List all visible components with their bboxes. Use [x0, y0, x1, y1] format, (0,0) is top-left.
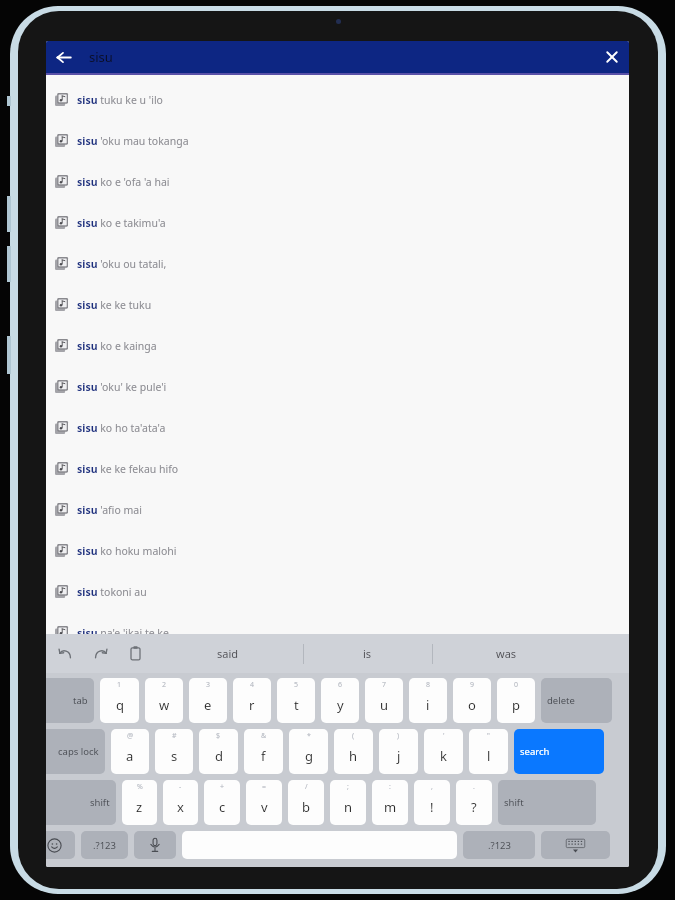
button[interactable]: sisu ke ke fekau hifo: [46, 448, 629, 489]
button[interactable]: sisu ko hoku malohi: [46, 530, 629, 571]
staticText: 2: [162, 680, 167, 690]
button[interactable]: :: [372, 780, 408, 825]
staticText: is: [363, 646, 372, 661]
button[interactable]: sisu tuku ke u 'ilo: [46, 79, 629, 120]
button[interactable]: #: [155, 729, 193, 774]
staticText: 5: [294, 680, 299, 690]
button[interactable]: 3: [189, 678, 227, 723]
staticText: sisu ko e takimu'a: [77, 216, 166, 230]
staticText: sisu 'oku mau tokanga: [77, 134, 189, 148]
button[interactable]: /: [288, 780, 324, 825]
button[interactable]: 1: [100, 678, 139, 723]
button[interactable]: -: [163, 780, 198, 825]
button[interactable]: 6: [321, 678, 359, 723]
button[interactable]: sisu ke mau nofo ai: [46, 694, 629, 735]
staticText: 3: [206, 680, 211, 690]
button[interactable]: $: [199, 729, 238, 774]
button[interactable]: ,: [414, 780, 450, 825]
button[interactable]: is: [303, 634, 432, 673]
staticText: n: [344, 798, 353, 816]
staticText: 7: [382, 680, 387, 690]
button[interactable]: was: [432, 634, 581, 673]
button[interactable]: sisu 'oku ou tatali,: [46, 243, 629, 284]
button[interactable]: *: [289, 729, 328, 774]
staticText: caps lock: [58, 745, 99, 758]
staticText: sisu 'afio mai: [77, 503, 142, 517]
staticText: d: [215, 747, 223, 765]
button[interactable]: 4: [233, 678, 271, 723]
button[interactable]: @: [111, 729, 149, 774]
button[interactable]: Paste: [117, 634, 153, 673]
staticText: b: [302, 798, 310, 816]
staticText: sisu 'oku ou tatali,: [77, 257, 167, 271]
button[interactable]: sisu ko e takimu'a: [46, 202, 629, 243]
button[interactable]: ;: [330, 780, 366, 825]
staticText: r: [249, 696, 255, 714]
button[interactable]: shift: [498, 780, 596, 825]
staticText: sisu 'oku' ke pule'i: [77, 380, 167, 394]
button[interactable]: .?123: [81, 831, 128, 859]
button[interactable]: sisu ke ke tuku: [46, 284, 629, 325]
staticText: *: [307, 731, 311, 741]
button[interactable]: caps lock: [46, 729, 105, 774]
button[interactable]: &: [244, 729, 283, 774]
button[interactable]: .: [456, 780, 492, 825]
button[interactable]: 2: [145, 678, 183, 723]
button[interactable]: sisu ko e 'ofa 'a hai: [46, 161, 629, 202]
staticText: .?123: [93, 839, 116, 852]
button[interactable]: Dictate: [134, 831, 176, 859]
staticText: shift: [90, 796, 110, 809]
button[interactable]: sisu ko e kainga: [46, 325, 629, 366]
button[interactable]: search: [514, 729, 604, 774]
button[interactable]: said: [153, 634, 303, 673]
button[interactable]: Emoji: [46, 831, 75, 859]
button[interactable]: sisu ko ho ta'ata'a: [46, 407, 629, 448]
button[interactable]: shift: [46, 780, 116, 825]
staticText: a: [126, 747, 134, 765]
button[interactable]: sisu 'afio mai: [46, 489, 629, 530]
button[interactable]: ": [469, 729, 508, 774]
staticText: +: [220, 782, 225, 792]
button[interactable]: ': [424, 729, 463, 774]
staticText: &: [261, 731, 267, 741]
staticText: ,: [431, 782, 433, 792]
button[interactable]: sisu tokoni au: [46, 571, 629, 612]
staticText: !: [430, 798, 434, 816]
button[interactable]: sisu 'oku' ke pule'i: [46, 366, 629, 407]
button[interactable]: Close: [595, 41, 629, 73]
button[interactable]: ): [379, 729, 418, 774]
staticText: k: [440, 747, 447, 765]
staticText: sisu tuku ke u 'ilo: [77, 93, 163, 107]
button[interactable]: 8: [409, 678, 447, 723]
button[interactable]: 0: [497, 678, 535, 723]
button[interactable]: +: [204, 780, 240, 825]
button[interactable]: delete: [541, 678, 612, 723]
button[interactable]: sisu na'e 'ikai te ke: [46, 612, 629, 653]
staticText: i: [426, 696, 430, 714]
staticText: sisu 'oku ke fie ngaue: [77, 667, 184, 681]
staticText: sisu ko hoku malohi: [77, 544, 177, 558]
button[interactable]: Redo: [84, 634, 117, 673]
staticText: sisu ko e kainga: [77, 339, 157, 353]
button[interactable]: %: [122, 780, 157, 825]
button[interactable]: 5: [277, 678, 315, 723]
staticText: sisu ke mau nofo ai: [77, 708, 174, 722]
button[interactable]: .?123: [463, 831, 535, 859]
button[interactable]: Hide keyboard: [541, 831, 610, 859]
button[interactable]: 7: [365, 678, 403, 723]
staticText: c: [219, 798, 226, 816]
button[interactable]: tab: [46, 678, 94, 723]
button[interactable]: sisu 'oku mau tokanga: [46, 120, 629, 161]
staticText: sisu ko ho ta'ata'a: [77, 421, 166, 435]
staticText: =: [262, 782, 267, 792]
staticText: sisu: [89, 48, 113, 66]
button[interactable]: =: [246, 780, 282, 825]
staticText: -: [179, 782, 182, 792]
button[interactable]: sisu 'oku ke fie ngaue: [46, 653, 629, 694]
button[interactable]: Back: [46, 41, 80, 73]
button[interactable]: (: [334, 729, 373, 774]
staticText: .: [473, 782, 475, 792]
button[interactable]: Undo: [46, 634, 84, 673]
button[interactable]: 9: [453, 678, 491, 723]
